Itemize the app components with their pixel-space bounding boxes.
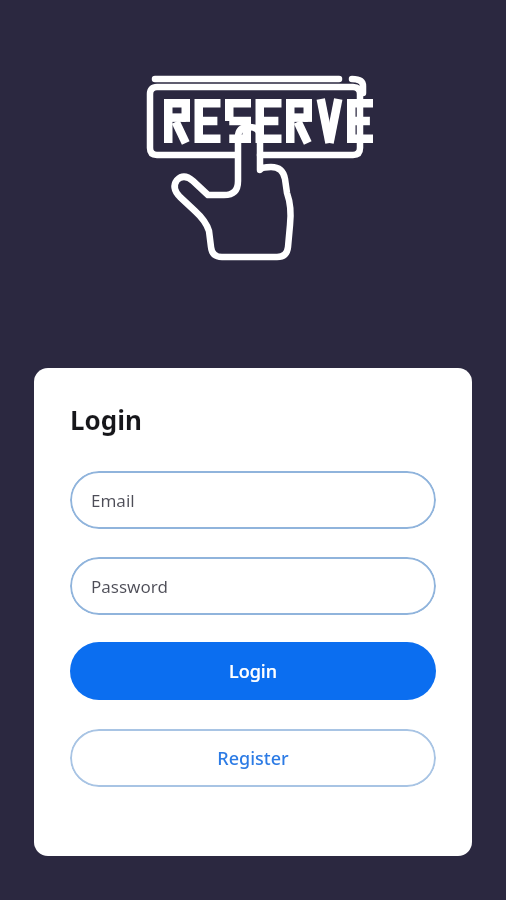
staticText: Login — [70, 402, 142, 437]
staticText: Login — [229, 659, 277, 684]
staticText: Password — [91, 575, 168, 598]
staticText: Email — [91, 489, 135, 512]
button[interactable]: Register — [70, 729, 436, 787]
button[interactable]: Login — [70, 642, 436, 700]
button[interactable]: Password — [70, 557, 436, 615]
staticText: Register — [217, 746, 289, 771]
other: Reserve logo — [140, 75, 370, 275]
button[interactable]: Email — [70, 471, 436, 529]
